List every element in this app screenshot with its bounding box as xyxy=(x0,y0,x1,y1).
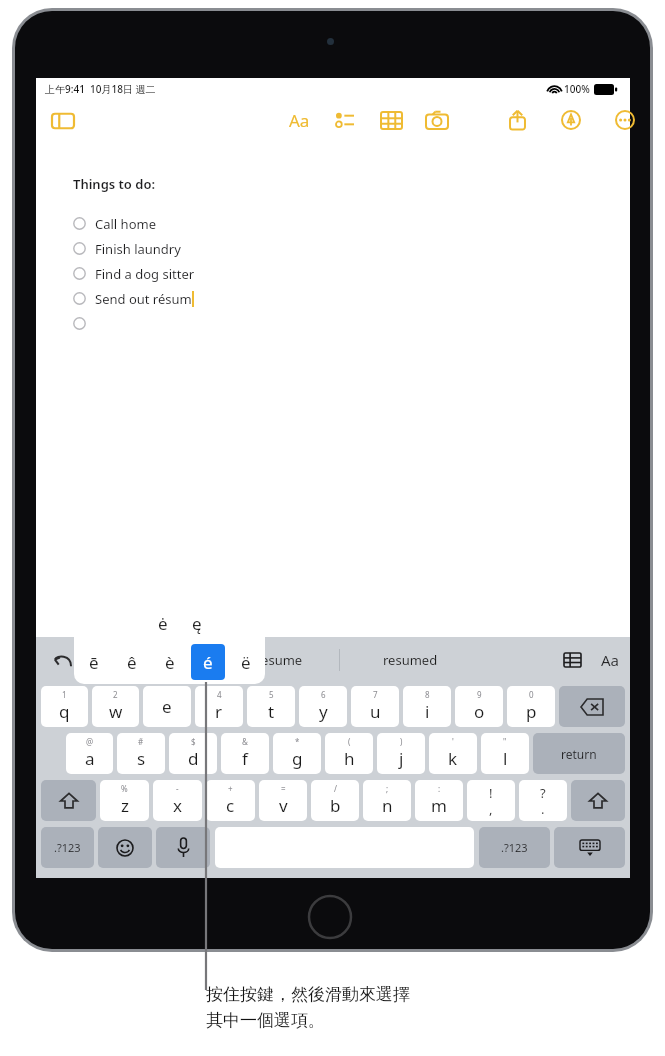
button[interactable]: / xyxy=(311,780,359,821)
button[interactable]: Share xyxy=(502,105,532,135)
button[interactable]: Camera xyxy=(422,105,452,135)
staticText: . xyxy=(541,800,545,818)
button[interactable]: ? xyxy=(519,780,567,821)
button[interactable]: More xyxy=(610,105,640,135)
button[interactable]: Shift right xyxy=(571,780,625,821)
staticText: = xyxy=(281,783,286,794)
button[interactable]: * xyxy=(273,733,321,774)
button[interactable]: Table xyxy=(376,105,406,135)
button[interactable]: 7 xyxy=(351,686,399,727)
button[interactable]: Numbers xyxy=(41,827,94,868)
button[interactable]: resume xyxy=(219,637,339,683)
button[interactable]: ) xyxy=(377,733,425,774)
button[interactable]: Shift xyxy=(41,780,96,821)
staticText: v xyxy=(279,794,288,817)
button[interactable]: ! xyxy=(467,780,515,821)
button[interactable]: 8 xyxy=(403,686,451,727)
button[interactable]: é xyxy=(191,644,225,680)
staticText: .?123 xyxy=(54,840,81,855)
button[interactable]: Hide keyboard xyxy=(554,827,625,868)
button[interactable]: e xyxy=(143,686,191,727)
button[interactable]: 6 xyxy=(299,686,347,727)
staticText: k xyxy=(448,747,458,770)
staticText: 9 xyxy=(477,689,482,700)
staticText: + xyxy=(228,783,233,794)
button[interactable]: Dictate xyxy=(156,827,210,868)
button[interactable]: Format xyxy=(284,105,314,135)
staticText: t xyxy=(268,700,275,723)
button[interactable]: Return xyxy=(533,733,625,774)
button[interactable]: : xyxy=(415,780,463,821)
button[interactable]: ' xyxy=(429,733,477,774)
staticText: r xyxy=(215,700,223,723)
staticText: # xyxy=(138,736,144,747)
staticText: resumed xyxy=(383,651,438,669)
button[interactable]: resumed xyxy=(340,637,480,683)
staticText: s xyxy=(137,747,146,770)
staticText: ) xyxy=(400,736,403,747)
staticText: 按住按鍵，然後滑動來選擇 其中一個選項。 xyxy=(206,984,410,1031)
button[interactable]: Numbers right xyxy=(479,827,550,868)
button[interactable]: @ xyxy=(66,733,113,774)
button[interactable]: Table xyxy=(558,646,586,674)
staticText: a xyxy=(85,747,95,770)
button[interactable]: - xyxy=(153,780,202,821)
staticText: m xyxy=(431,794,447,817)
button[interactable]: ë xyxy=(229,644,263,680)
staticText: é xyxy=(203,651,213,674)
staticText: $ xyxy=(191,736,196,747)
button[interactable]: Send out résum xyxy=(73,286,194,311)
staticText: ! xyxy=(489,784,493,802)
staticText: x xyxy=(173,794,182,817)
staticText: .?123 xyxy=(501,840,528,855)
button[interactable]: ē xyxy=(76,644,111,680)
staticText: : xyxy=(438,783,441,794)
button[interactable]: Home xyxy=(307,894,353,940)
staticText: " xyxy=(503,736,507,747)
staticText: l xyxy=(503,747,508,770)
button[interactable]: 0 xyxy=(507,686,555,727)
staticText: 7 xyxy=(373,689,378,700)
button[interactable]: ; xyxy=(363,780,411,821)
button[interactable]: Aa xyxy=(596,646,624,674)
button[interactable]: Finish laundry xyxy=(73,236,181,261)
button[interactable]: Undo xyxy=(36,637,88,683)
staticText: b xyxy=(330,794,341,817)
staticText: Finish laundry xyxy=(95,240,181,258)
button[interactable]: # xyxy=(117,733,165,774)
button[interactable]: 1 xyxy=(41,686,88,727)
staticText: 8 xyxy=(425,689,430,700)
staticText: ê xyxy=(127,651,137,674)
staticText: ' xyxy=(452,736,454,747)
staticText: 0 xyxy=(529,689,534,700)
button[interactable]: 2 xyxy=(92,686,139,727)
button[interactable]: Find a dog sitter xyxy=(73,261,195,286)
button[interactable]: Sidebar xyxy=(50,108,76,134)
button[interactable]: Markup xyxy=(556,105,586,135)
button[interactable]: 5 xyxy=(247,686,295,727)
staticText: z xyxy=(121,794,129,817)
button[interactable]: % xyxy=(100,780,149,821)
button[interactable]: ê xyxy=(115,644,149,680)
staticText: ? xyxy=(540,784,546,802)
button[interactable]: Call home xyxy=(73,211,156,236)
button[interactable]: 4 xyxy=(195,686,243,727)
button[interactable]: è xyxy=(153,644,187,680)
button[interactable]: + xyxy=(206,780,255,821)
staticText: w xyxy=(109,700,123,723)
button[interactable]: & xyxy=(221,733,269,774)
button[interactable]: 9 xyxy=(455,686,503,727)
button[interactable]: $ xyxy=(169,733,217,774)
button[interactable]: = xyxy=(259,780,307,821)
button[interactable]: Backspace xyxy=(559,686,625,727)
button[interactable]: Emoji xyxy=(98,827,152,868)
staticText: h xyxy=(344,747,355,770)
button[interactable]: ( xyxy=(325,733,373,774)
button[interactable]: ė xyxy=(74,606,265,684)
staticText: Find a dog sitter xyxy=(95,265,195,283)
staticText: 6 xyxy=(321,689,326,700)
button[interactable]: " xyxy=(481,733,529,774)
button[interactable]: Checklist xyxy=(330,105,360,135)
